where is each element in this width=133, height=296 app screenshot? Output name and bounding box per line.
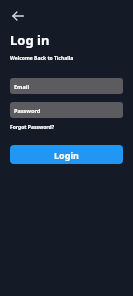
button[interactable]: Login xyxy=(10,145,123,164)
staticText: Login xyxy=(54,149,79,161)
staticText: Welcome Back to Tichalla xyxy=(10,55,74,62)
button[interactable]: Password xyxy=(10,102,123,118)
staticText: Password xyxy=(14,107,41,114)
button[interactable]: Email xyxy=(10,78,123,94)
button[interactable]: Forgot Password? xyxy=(10,123,55,132)
staticText: Email xyxy=(14,83,30,90)
button[interactable]: Back xyxy=(10,8,26,24)
staticText: Log in xyxy=(10,31,50,49)
staticText: Forgot Password? xyxy=(10,124,55,131)
